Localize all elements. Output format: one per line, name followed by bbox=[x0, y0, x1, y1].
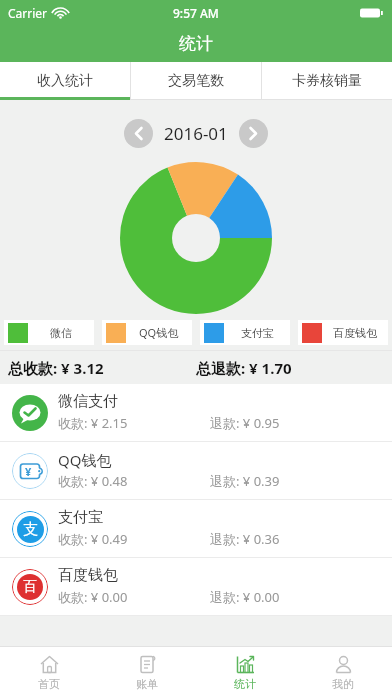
staticText: 收款: ¥ 0.00 bbox=[58, 588, 128, 606]
staticText: 账单 bbox=[136, 677, 158, 691]
staticText: 退款: ¥ 0.95 bbox=[210, 414, 280, 432]
staticText: 收入统计 bbox=[37, 72, 93, 90]
staticText: 百度钱包 bbox=[58, 566, 118, 585]
button[interactable] bbox=[124, 119, 153, 148]
staticText: 收款: ¥ 0.49 bbox=[58, 530, 128, 548]
button[interactable]: 收入统计 bbox=[0, 62, 130, 100]
staticText: 统计 bbox=[179, 33, 213, 54]
staticText: 收款: ¥ 0.48 bbox=[58, 472, 128, 490]
staticText: 卡券核销量 bbox=[292, 72, 362, 90]
staticText: 退款: ¥ 0.00 bbox=[210, 588, 280, 606]
staticText: Carrier bbox=[8, 5, 48, 21]
staticText: QQ钱包 bbox=[58, 450, 112, 470]
staticText: 2016-01 bbox=[164, 122, 228, 145]
button[interactable]: QQ钱包 bbox=[102, 320, 192, 345]
button[interactable]: 百度钱包 bbox=[298, 320, 388, 345]
staticText: 支付宝 bbox=[241, 326, 274, 340]
staticText: 支付宝 bbox=[58, 508, 103, 527]
button[interactable]: 统计 bbox=[196, 647, 294, 696]
staticText: 我的 bbox=[332, 677, 354, 691]
staticText: 统计 bbox=[234, 677, 256, 691]
button[interactable]: 首页 bbox=[0, 647, 98, 696]
button[interactable] bbox=[239, 119, 268, 148]
staticText: 微信支付 bbox=[58, 392, 118, 411]
button[interactable]: 账单 bbox=[98, 647, 196, 696]
staticText: 总收款: ¥ 3.12 bbox=[8, 358, 104, 378]
button[interactable]: 我的 bbox=[294, 647, 392, 696]
staticText: 总退款: ¥ 1.70 bbox=[196, 358, 292, 378]
staticText: ¥ bbox=[25, 464, 32, 479]
button[interactable]: 支 bbox=[0, 500, 392, 557]
staticText: 退款: ¥ 0.36 bbox=[210, 530, 280, 548]
staticText: 微信 bbox=[50, 326, 72, 340]
staticText: 交易笔数 bbox=[168, 72, 224, 90]
button[interactable]: 百 bbox=[0, 558, 392, 615]
button[interactable]: 交易笔数 bbox=[131, 62, 261, 100]
staticText: QQ钱包 bbox=[139, 325, 179, 340]
button[interactable]: 卡券核销量 bbox=[262, 62, 392, 100]
staticText: 支 bbox=[23, 520, 38, 539]
button[interactable]: 微信 bbox=[4, 320, 94, 345]
button[interactable]: 支付宝 bbox=[200, 320, 290, 345]
staticText: 收款: ¥ 2.15 bbox=[58, 414, 128, 432]
staticText: 退款: ¥ 0.39 bbox=[210, 472, 280, 490]
staticText: 百度钱包 bbox=[333, 326, 377, 340]
staticText: 9:57 AM bbox=[173, 5, 219, 21]
button[interactable]: 微信支付 bbox=[0, 384, 392, 441]
staticText: 百 bbox=[23, 578, 37, 596]
button[interactable]: ¥ bbox=[0, 442, 392, 499]
staticText: 首页 bbox=[38, 677, 60, 691]
